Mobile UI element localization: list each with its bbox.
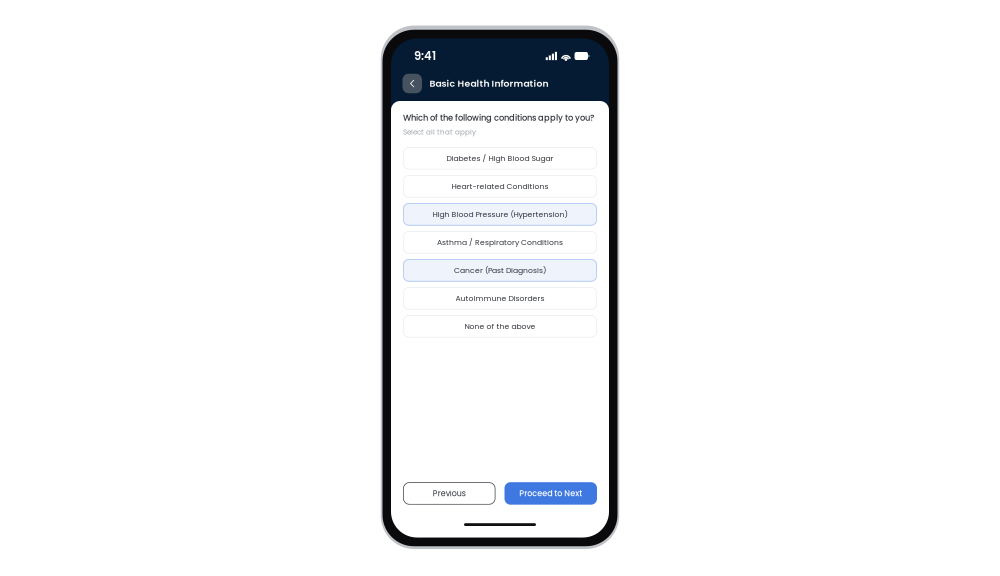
staticText: Proceed to Next xyxy=(519,488,582,499)
staticText: Which of the following conditions apply … xyxy=(403,112,594,124)
staticText: High Blood Pressure (Hypertension) xyxy=(432,209,567,220)
button[interactable]: Cancer (Past Diagnosis) xyxy=(403,259,597,282)
staticText: Heart-related Conditions xyxy=(451,181,548,192)
staticText: Cancer (Past Diagnosis) xyxy=(454,265,546,276)
button[interactable]: Proceed to Next xyxy=(504,482,597,505)
staticText: Diabetes / High Blood Sugar xyxy=(446,153,553,164)
button[interactable]: Previous xyxy=(403,482,495,505)
button[interactable]: Back xyxy=(402,74,422,93)
staticText: Select all that apply xyxy=(403,127,476,137)
staticText: Previous xyxy=(433,488,466,499)
staticText: 9:41 xyxy=(414,48,436,64)
button[interactable]: Asthma / Respiratory Conditions xyxy=(403,231,597,254)
staticText: Basic Health Information xyxy=(429,77,548,90)
button[interactable]: Heart-related Conditions xyxy=(403,175,597,198)
button[interactable]: Autoimmune Disorders xyxy=(403,287,597,310)
button[interactable]: Diabetes / High Blood Sugar xyxy=(403,147,597,170)
button[interactable]: High Blood Pressure (Hypertension) xyxy=(403,203,597,226)
staticText: Asthma / Respiratory Conditions xyxy=(437,237,563,248)
staticText: Autoimmune Disorders xyxy=(455,293,544,304)
staticText: None of the above xyxy=(464,321,535,332)
button[interactable]: None of the above xyxy=(403,315,597,338)
